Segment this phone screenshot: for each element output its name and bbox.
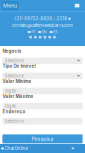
staticText: Selecione (5, 58, 24, 63)
button[interactable]: PT (28, 30, 35, 34)
staticText: Pesquisa (31, 136, 53, 142)
staticText: Digite (5, 88, 16, 94)
button[interactable]: Social link (53, 36, 56, 38)
staticText: (31) 99733-8808 / 3318 (14, 16, 67, 21)
staticText: contato@cafeimoveisbarra.com (12, 23, 73, 28)
staticText: PT (31, 30, 35, 34)
button[interactable]: Social link (34, 36, 37, 38)
staticText: Chat Online (5, 146, 28, 151)
button[interactable]: Menu (1, 1, 19, 10)
button[interactable]: EN (38, 30, 47, 34)
staticText: Valor Mínimo (2, 79, 31, 84)
staticText: Endereço (2, 109, 25, 114)
button[interactable]: contato@cafeimoveisbarra.com (12, 23, 73, 28)
button[interactable]: Selecione (2, 118, 83, 124)
button[interactable]: Pesquisa (2, 134, 83, 143)
staticText: Tipo De Imóvel (2, 63, 35, 69)
button[interactable]: Digite (2, 103, 83, 109)
staticText: ES (53, 30, 57, 34)
staticText: Valor Máximo (2, 94, 33, 99)
staticText: Menu (3, 2, 17, 9)
button[interactable]: ES (50, 30, 57, 34)
staticText: Digite (5, 103, 16, 109)
button[interactable]: (31) 99733-8808 / 3318 (14, 16, 71, 21)
button[interactable]: Selecione (2, 57, 83, 64)
button[interactable]: Chat Online (0, 144, 85, 153)
button[interactable]: Selecione (2, 73, 83, 79)
staticText: Negocio (2, 48, 21, 54)
staticText: Selecione (5, 119, 24, 124)
staticText: Selecione (5, 73, 24, 78)
button[interactable]: Social link (48, 36, 51, 38)
button[interactable]: Social link (29, 36, 32, 38)
button[interactable]: Digite (2, 88, 83, 94)
staticText: EN (42, 30, 47, 34)
